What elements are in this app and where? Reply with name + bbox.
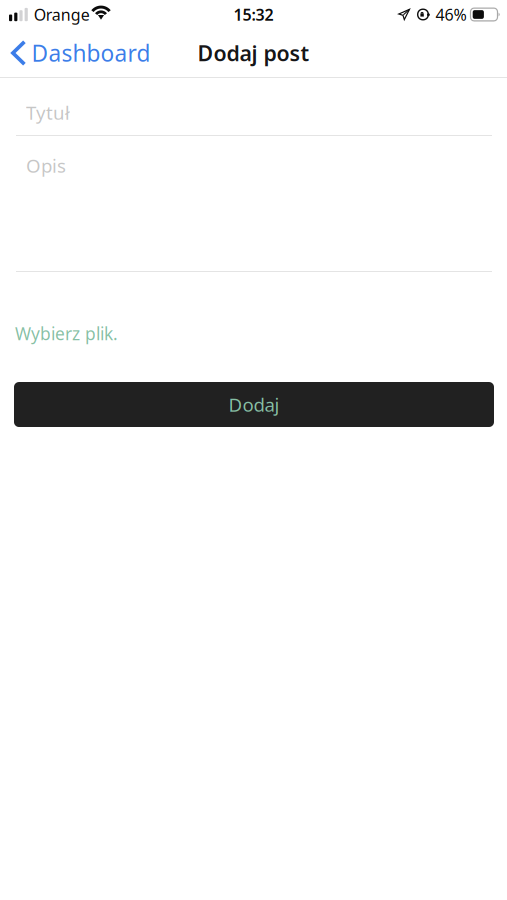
button[interactable]: Wybierz plik. (0, 314, 133, 353)
staticText: Wybierz plik. (15, 322, 118, 345)
staticText: Dodaj post (197, 39, 309, 67)
button[interactable]: Dashboard (0, 31, 160, 75)
staticText: Opis (26, 153, 66, 178)
staticText: Tytuł (26, 100, 70, 125)
staticText: Dodaj (228, 392, 279, 417)
staticText: Orange (34, 4, 90, 25)
button[interactable]: Opis (16, 136, 492, 272)
staticText: 46% (435, 4, 466, 25)
staticText: 15:32 (233, 4, 273, 25)
button[interactable]: Tytuł (16, 78, 492, 136)
staticText: Dashboard (31, 38, 150, 68)
button[interactable]: Dodaj (14, 382, 494, 427)
